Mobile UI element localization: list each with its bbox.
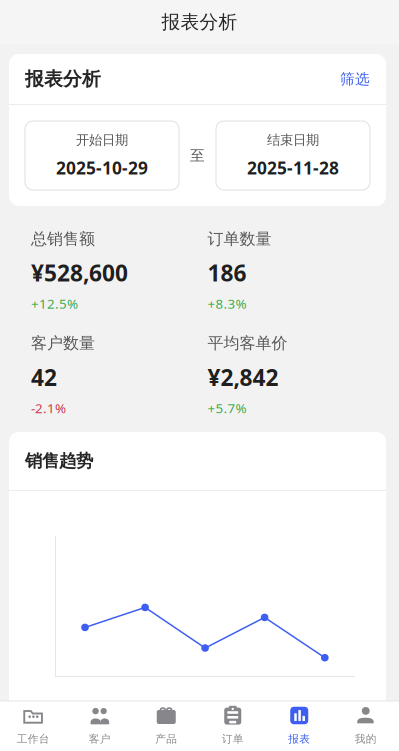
button[interactable]: 报表 (266, 701, 332, 751)
button[interactable]: 我的 (332, 701, 399, 751)
button[interactable]: 客户 (66, 701, 133, 751)
staticText: -2.1% (31, 399, 66, 417)
staticText: 平均客单价 (207, 333, 287, 353)
staticText: 订单数量 (207, 229, 271, 249)
staticText: +5.7% (207, 399, 246, 417)
button[interactable]: 结束日期 (216, 121, 370, 190)
staticText: 开始日期 (76, 132, 128, 148)
staticText: 筛选 (340, 70, 370, 88)
staticText: 至 (190, 146, 205, 164)
staticText: 结束日期 (267, 132, 319, 148)
staticText: 总销售额 (31, 229, 95, 249)
button[interactable]: 开始日期 (25, 121, 179, 190)
staticText: 报表分析 (25, 67, 101, 90)
staticText: 2025-11-28 (247, 156, 339, 179)
staticText: 产品 (155, 732, 177, 746)
staticText: ¥528,600 (31, 258, 128, 288)
button[interactable]: 产品 (133, 701, 199, 751)
staticText: 报表 (288, 732, 310, 746)
staticText: 42 (31, 362, 57, 392)
staticText: 客户 (89, 732, 111, 746)
staticText: 我的 (355, 732, 377, 746)
staticText: 工作台 (17, 732, 50, 746)
staticText: +12.5% (31, 295, 78, 312)
button[interactable]: 订单 (199, 701, 266, 751)
staticText: 报表分析 (161, 10, 237, 33)
staticText: 订单 (222, 732, 244, 746)
staticText: 186 (207, 258, 246, 288)
staticText: +8.3% (207, 295, 246, 312)
button[interactable]: 工作台 (0, 701, 66, 751)
staticText: 客户数量 (31, 333, 95, 353)
staticText: 2025-10-29 (56, 156, 148, 179)
staticText: ¥2,842 (207, 362, 278, 392)
staticText: 销售趋势 (25, 450, 93, 472)
button[interactable]: 筛选 (340, 70, 370, 88)
